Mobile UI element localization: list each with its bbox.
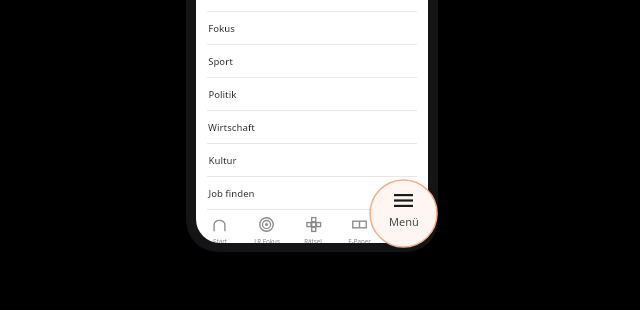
- staticText: E-Paper: [348, 237, 371, 243]
- button[interactable]: Menü: [382, 210, 428, 243]
- other: Start: [212, 217, 227, 232]
- button[interactable]: Job finden: [196, 177, 428, 209]
- button[interactable]: Politik: [196, 78, 428, 110]
- button[interactable]: Wirtschaft: [196, 111, 428, 143]
- staticText: Kultur: [208, 154, 237, 167]
- staticText: Menü: [389, 214, 419, 229]
- staticText: Start: [213, 237, 227, 243]
- staticText: Rätsel: [304, 237, 322, 243]
- other: Menü: [398, 217, 413, 232]
- staticText: Politik: [208, 88, 237, 101]
- button[interactable]: Rätsel: [290, 210, 336, 243]
- staticText: Sport: [208, 55, 233, 68]
- other: E-Paper: [352, 217, 367, 232]
- other: Menü hervorgehoben: [369, 179, 438, 248]
- button[interactable]: Fokus: [196, 12, 428, 44]
- button[interactable]: Sport: [196, 45, 428, 77]
- button[interactable]: Kultur: [196, 144, 428, 176]
- staticText: Job finden: [208, 187, 255, 200]
- button[interactable]: Start: [196, 210, 243, 243]
- staticText: Fokus: [208, 22, 235, 35]
- other: Rätsel: [306, 217, 321, 232]
- staticText: LR Fokus: [254, 237, 280, 243]
- button[interactable]: Menü öffnen: [381, 194, 426, 229]
- button[interactable]: E-Paper: [336, 210, 382, 243]
- other: LR Fokus: [259, 217, 274, 232]
- other: Menü öffnen: [394, 194, 413, 207]
- staticText: Wirtschaft: [208, 121, 255, 134]
- button[interactable]: LR Fokus: [243, 210, 290, 243]
